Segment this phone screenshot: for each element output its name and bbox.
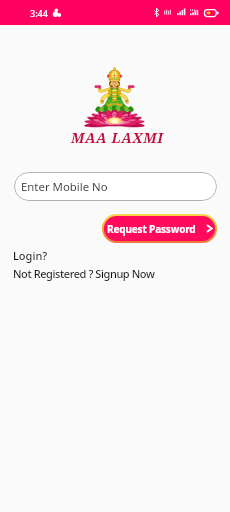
- button[interactable]: Not Registered ? Signup Now: [9, 263, 159, 284]
- staticText: Not Registered ? Signup Now: [13, 266, 155, 281]
- staticText: Enter Mobile No: [21, 179, 108, 195]
- staticText: 3:44: [30, 7, 48, 19]
- staticText: Login?: [13, 248, 48, 263]
- button[interactable]: Request Password: [102, 214, 217, 243]
- staticText: Request Password: [107, 222, 196, 236]
- button[interactable]: Login?: [9, 245, 52, 266]
- button[interactable]: Enter Mobile No: [14, 172, 217, 201]
- staticText: MAA LAXMI: [71, 128, 164, 147]
